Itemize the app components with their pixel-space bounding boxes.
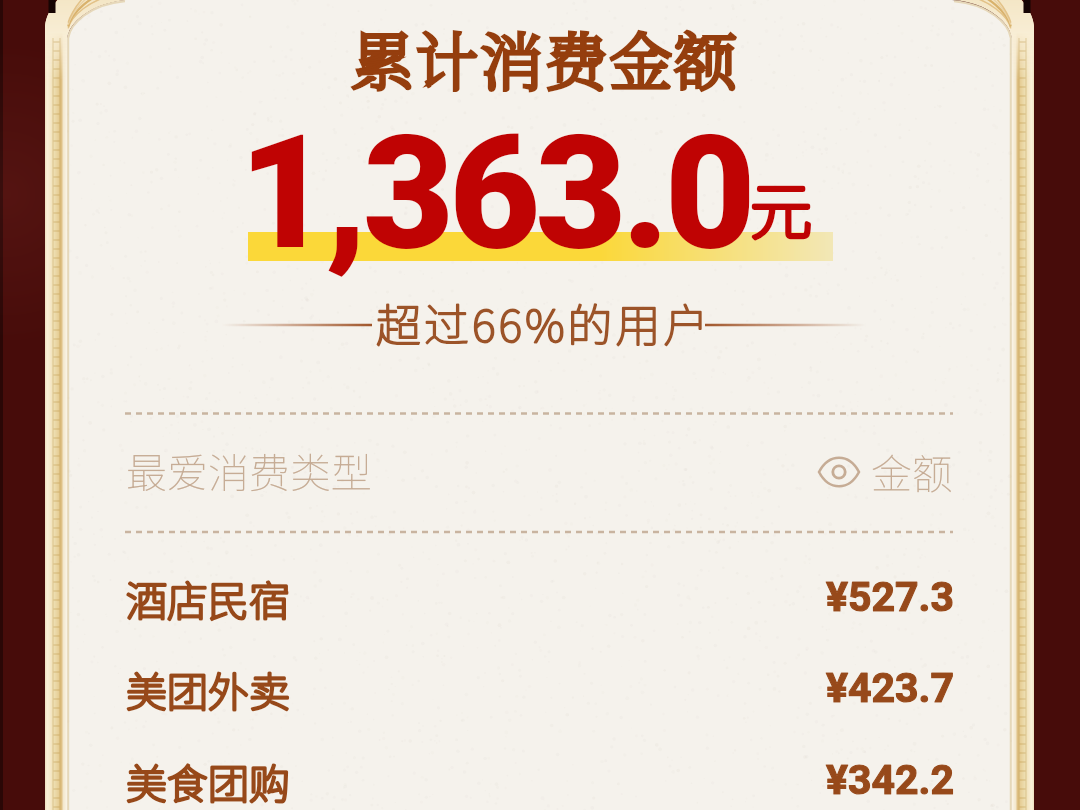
staticText: 美食团购 xyxy=(126,751,290,810)
staticText: 最爱消费类型 xyxy=(126,440,372,499)
staticText: 元 xyxy=(750,162,813,252)
staticText: 美食团购 xyxy=(126,751,290,810)
staticText: 超过66%的用户 xyxy=(376,290,712,355)
staticText: 超过66%的用户 xyxy=(376,290,712,355)
staticText: 美团外卖 xyxy=(126,659,290,718)
button[interactable]: 酒店民宿 xyxy=(126,567,955,627)
staticText: 酒店民宿 xyxy=(126,568,290,627)
staticText: 累计消费金额 xyxy=(351,12,739,103)
staticText: 1,363.0 xyxy=(239,101,751,285)
staticText: 金额 xyxy=(871,441,953,500)
staticText: 美团外卖 xyxy=(126,659,290,718)
staticText: ¥527.3 xyxy=(826,573,955,621)
staticText: 累计消费金额 xyxy=(351,12,739,103)
staticText: ¥342.2 xyxy=(826,756,955,804)
staticText: ¥423.7 xyxy=(826,664,955,712)
staticText: 元 xyxy=(750,162,813,252)
staticText: ¥527.3 xyxy=(826,573,955,621)
button[interactable]: Toggle amount visibility xyxy=(816,437,955,504)
staticText: ¥423.7 xyxy=(826,664,955,712)
button[interactable]: 美食团购 xyxy=(126,750,955,810)
staticText: ¥342.2 xyxy=(826,756,955,804)
button[interactable]: 美团外卖 xyxy=(126,658,955,718)
staticText: 酒店民宿 xyxy=(126,568,290,627)
